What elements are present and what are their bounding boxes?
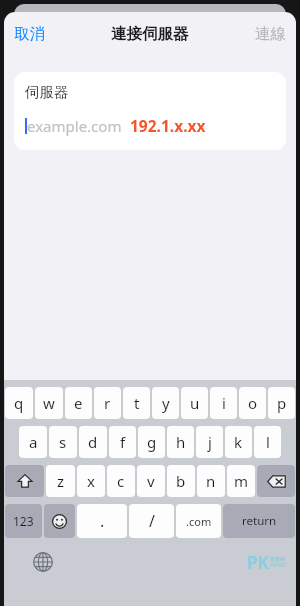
staticText: b — [176, 471, 186, 491]
staticText: j — [208, 432, 212, 452]
button[interactable]: y — [152, 387, 179, 419]
staticText: return — [242, 513, 277, 529]
staticText: 痞客邦 — [270, 556, 285, 562]
staticText: f — [120, 432, 126, 452]
button[interactable]: 連線 — [247, 17, 294, 51]
button[interactable]: .com — [176, 504, 221, 538]
button[interactable]: 取消 — [6, 17, 53, 51]
button[interactable]: g — [138, 426, 165, 458]
button[interactable]: c — [107, 465, 135, 497]
button[interactable]: . — [77, 504, 127, 538]
button[interactable]: z — [46, 465, 75, 497]
staticText: 連接伺服器 — [111, 24, 189, 44]
staticText: g — [147, 432, 157, 452]
button[interactable]: w — [35, 387, 63, 419]
button[interactable]: f — [109, 426, 136, 458]
staticText: u — [190, 393, 200, 413]
staticText: .com — [186, 514, 212, 529]
button[interactable]: r — [94, 387, 121, 419]
staticText: example.com — [27, 116, 122, 136]
button[interactable]: p — [268, 387, 295, 419]
staticText: / — [149, 510, 155, 532]
staticText: w — [43, 393, 55, 413]
staticText: y — [162, 393, 170, 413]
staticText: 192.1.x.xx — [130, 115, 206, 136]
staticText: z — [57, 471, 65, 491]
button[interactable]: o — [239, 387, 266, 419]
button[interactable]: k — [225, 426, 252, 458]
button[interactable]: d — [79, 426, 107, 458]
staticText: i — [222, 393, 226, 413]
button[interactable]: Change keyboard language — [30, 549, 56, 575]
staticText: x — [87, 471, 95, 491]
button[interactable]: b — [167, 465, 195, 497]
staticText: l — [266, 432, 270, 452]
button[interactable]: / — [129, 504, 174, 538]
staticText: h — [176, 432, 186, 452]
staticText: e — [74, 393, 83, 413]
button[interactable]: l — [254, 426, 281, 458]
staticText: PK — [247, 551, 269, 574]
staticText: a — [29, 432, 38, 452]
button[interactable]: x — [77, 465, 105, 497]
staticText: 伺服器 — [25, 83, 69, 101]
staticText: p — [277, 393, 287, 413]
button[interactable]: Backspace — [257, 465, 295, 497]
staticText: t — [134, 393, 140, 413]
button[interactable]: t — [123, 387, 150, 419]
staticText: c — [117, 471, 125, 491]
staticText: m — [234, 471, 249, 491]
staticText: r — [104, 393, 111, 413]
staticText: 取消 — [14, 24, 45, 44]
staticText: 123 — [13, 513, 34, 529]
button[interactable]: Emoji — [44, 504, 75, 538]
staticText: d — [88, 432, 98, 452]
button[interactable]: 123 — [5, 504, 42, 538]
button[interactable]: s — [49, 426, 77, 458]
staticText: PIXNET — [270, 562, 288, 569]
staticText: k — [234, 432, 243, 452]
button[interactable]: v — [137, 465, 165, 497]
button[interactable]: m — [227, 465, 255, 497]
staticText: 連線 — [255, 24, 286, 44]
button[interactable]: return — [223, 504, 295, 538]
staticText: q — [14, 393, 24, 413]
staticText: s — [59, 432, 67, 452]
button[interactable]: q — [5, 387, 33, 419]
staticText: o — [248, 393, 258, 413]
button[interactable]: 伺服器 — [14, 72, 286, 150]
staticText: . — [100, 510, 105, 532]
staticText: v — [147, 471, 155, 491]
button[interactable]: n — [197, 465, 225, 497]
button[interactable]: u — [181, 387, 208, 419]
button[interactable]: Shift — [5, 465, 44, 497]
button[interactable]: h — [167, 426, 194, 458]
button[interactable]: i — [210, 387, 237, 419]
button[interactable]: a — [19, 426, 47, 458]
button[interactable]: j — [196, 426, 223, 458]
button[interactable]: e — [65, 387, 92, 419]
staticText: n — [206, 471, 216, 491]
